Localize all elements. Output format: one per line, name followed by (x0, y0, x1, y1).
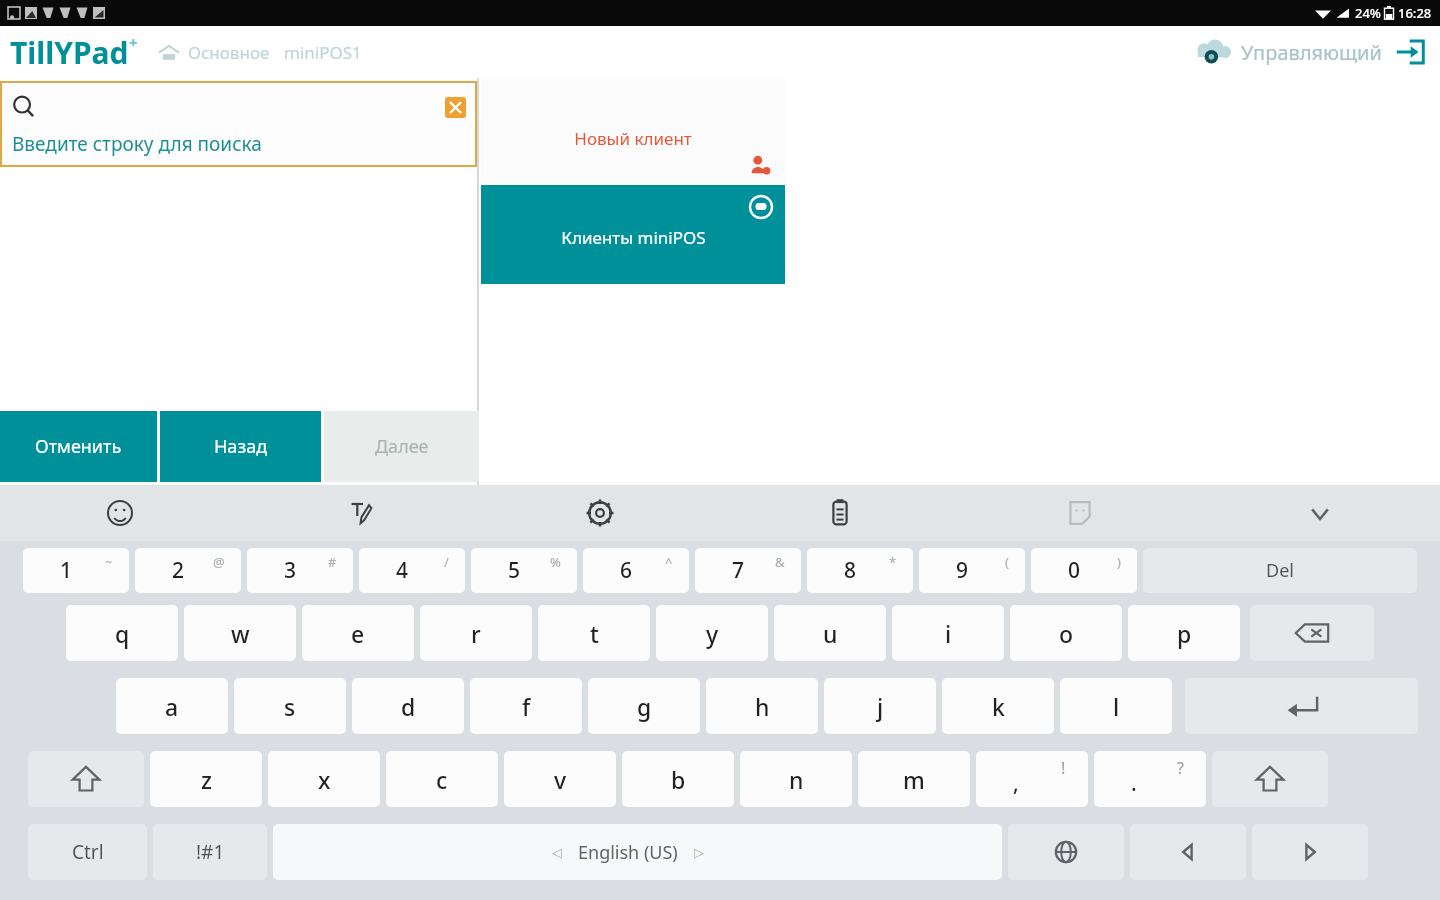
button[interactable]: n (740, 751, 852, 807)
button[interactable]: Shift (28, 751, 144, 807)
staticText: ? (1177, 757, 1184, 779)
staticText: o (1059, 618, 1074, 649)
button[interactable]: Space (273, 824, 1002, 880)
button[interactable]: Влево (1130, 824, 1246, 880)
button[interactable]: Emoji (0, 485, 240, 541)
button[interactable]: Отменить (0, 411, 157, 482)
staticText: % (550, 553, 561, 571)
staticText: ^ (665, 553, 673, 571)
staticText: Основное (188, 41, 270, 64)
staticText: Отменить (35, 434, 122, 459)
button[interactable]: 5 (471, 548, 577, 593)
button[interactable]: c (386, 751, 498, 807)
staticText: ( (1005, 553, 1009, 571)
staticText: 1 (60, 556, 73, 585)
button[interactable]: p (1128, 605, 1240, 661)
staticText: Del (1266, 558, 1294, 583)
button[interactable]: Backspace (1250, 605, 1374, 661)
button[interactable]: Клиенты miniPOS (481, 185, 785, 284)
button[interactable]: m (858, 751, 970, 807)
staticText: m (903, 764, 925, 795)
staticText: u (823, 618, 838, 649)
button[interactable]: y (656, 605, 768, 661)
button[interactable]: r (420, 605, 532, 661)
button[interactable]: Stickers (960, 485, 1200, 541)
staticText: b (671, 764, 686, 795)
button[interactable]: , (976, 751, 1088, 807)
button[interactable]: d (352, 678, 464, 734)
staticText: 7 (732, 556, 745, 585)
button[interactable]: . (1094, 751, 1206, 807)
staticText: Назад (214, 434, 268, 459)
button[interactable]: Назад (160, 411, 321, 482)
button[interactable]: Settings (480, 485, 720, 541)
staticText: s (284, 691, 296, 722)
button[interactable]: 2 (135, 548, 241, 593)
button[interactable]: Новый клиент (481, 79, 785, 184)
staticText: * (889, 553, 897, 571)
button[interactable]: Очистить (445, 97, 466, 118)
button[interactable]: x (268, 751, 380, 807)
staticText: f (522, 691, 531, 722)
button[interactable]: Далее (324, 411, 479, 482)
staticText: English (US) (578, 840, 678, 865)
staticText: q (115, 618, 130, 649)
button[interactable]: Введите строку для поиска (0, 81, 477, 167)
staticText: d (401, 691, 416, 722)
button[interactable]: f (470, 678, 582, 734)
staticText: 2 (172, 556, 185, 585)
button[interactable]: 8 (807, 548, 913, 593)
staticText: / (444, 553, 449, 571)
button[interactable]: a (116, 678, 228, 734)
staticText: 24% (1355, 4, 1381, 22)
button[interactable]: u (774, 605, 886, 661)
staticText: ▷ (694, 845, 704, 860)
button[interactable]: q (66, 605, 178, 661)
staticText: 4 (396, 556, 409, 585)
button[interactable]: Управляющий (1193, 32, 1426, 72)
button[interactable]: Вправо (1252, 824, 1368, 880)
staticText: l (1113, 691, 1120, 722)
staticText: Клиенты miniPOS (561, 226, 706, 249)
button[interactable]: 3 (247, 548, 353, 593)
button[interactable]: 6 (583, 548, 689, 593)
button[interactable]: o (1010, 605, 1122, 661)
staticText: ! (1061, 757, 1066, 779)
button[interactable]: Del (1143, 548, 1417, 593)
button[interactable]: 0 (1031, 548, 1137, 593)
staticText: , (1013, 769, 1019, 798)
button[interactable]: Enter (1185, 678, 1418, 734)
button[interactable]: 9 (919, 548, 1025, 593)
button[interactable]: s (234, 678, 346, 734)
staticText: Новый клиент (574, 127, 692, 150)
button[interactable]: i (892, 605, 1004, 661)
button[interactable]: Язык (1008, 824, 1124, 880)
button[interactable]: v (504, 751, 616, 807)
staticText: Ctrl (72, 839, 104, 865)
button[interactable]: z (150, 751, 262, 807)
button[interactable]: t (538, 605, 650, 661)
button[interactable]: Ctrl (28, 824, 147, 880)
staticText: # (328, 553, 337, 571)
button[interactable]: e (302, 605, 414, 661)
button[interactable]: h (706, 678, 818, 734)
staticText: Управляющий (1241, 39, 1382, 66)
button[interactable]: 1 (23, 548, 129, 593)
button[interactable]: !#1 (153, 824, 267, 880)
button[interactable]: Clipboard (720, 485, 960, 541)
button[interactable]: g (588, 678, 700, 734)
button[interactable]: Handwriting (240, 485, 480, 541)
staticText: 16:28 (1398, 4, 1432, 22)
staticText: !#1 (196, 839, 225, 865)
button[interactable]: l (1060, 678, 1172, 734)
staticText: 6 (620, 556, 633, 585)
button[interactable]: w (184, 605, 296, 661)
button[interactable]: Hide keyboard (1200, 485, 1440, 541)
button[interactable]: j (824, 678, 936, 734)
button[interactable]: b (622, 751, 734, 807)
button[interactable]: k (942, 678, 1054, 734)
button[interactable]: 7 (695, 548, 801, 593)
button[interactable]: 4 (359, 548, 465, 593)
staticText: 8 (844, 556, 857, 585)
button[interactable]: Shift (1212, 751, 1328, 807)
